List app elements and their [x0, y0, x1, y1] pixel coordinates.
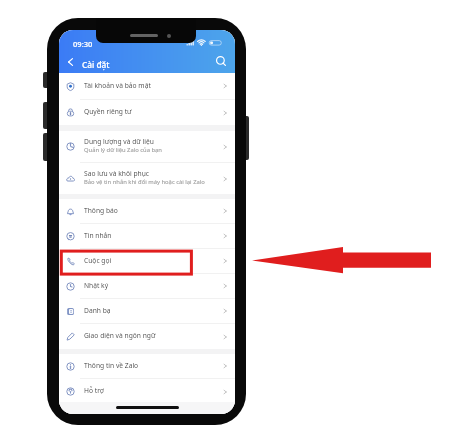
button[interactable]: Tài khoản và bảo mật	[59, 73, 235, 99]
staticText: Sao lưu và khôi phục	[84, 169, 150, 178]
button[interactable]: Cuộc gọi	[59, 249, 235, 273]
button[interactable]: Quyền riêng tư	[59, 100, 235, 125]
staticText: Bảo vệ tin nhắn khi đổi máy hoặc cài lại…	[84, 178, 205, 186]
button[interactable]: Dung lượng và dữ liệu	[59, 131, 235, 162]
staticText: Danh bạ	[84, 306, 111, 315]
staticText: Thông tin về Zalo	[84, 361, 139, 370]
staticText: Dung lượng và dữ liệu	[84, 137, 154, 146]
staticText: Hỗ trợ	[84, 386, 104, 395]
button[interactable]: Nhật ký	[59, 274, 235, 298]
button[interactable]: Giao diện và ngôn ngữ	[59, 324, 235, 349]
staticText: Thông báo	[84, 206, 118, 215]
button[interactable]: Danh bạ	[59, 299, 235, 323]
button[interactable]: Thông báo	[59, 199, 235, 223]
staticText: Cuộc gọi	[84, 256, 112, 265]
button[interactable]: Back	[65, 55, 76, 68]
staticText: Tin nhắn	[84, 231, 112, 240]
staticText: Nhật ký	[84, 281, 109, 290]
staticText: Giao diện và ngôn ngữ	[84, 331, 156, 340]
staticText: Cài đặt	[82, 59, 110, 70]
staticText: Quản lý dữ liệu Zalo của bạn	[84, 146, 162, 154]
button[interactable]: Search	[216, 56, 229, 69]
button[interactable]: Tin nhắn	[59, 224, 235, 248]
button[interactable]: Thông tin về Zalo	[59, 354, 235, 378]
staticText: 09:30	[73, 39, 93, 49]
button[interactable]: Sao lưu và khôi phục	[59, 163, 235, 194]
staticText: Quyền riêng tư	[84, 107, 132, 116]
staticText: Tài khoản và bảo mật	[84, 81, 151, 90]
button[interactable]: Hỗ trợ	[59, 379, 235, 404]
